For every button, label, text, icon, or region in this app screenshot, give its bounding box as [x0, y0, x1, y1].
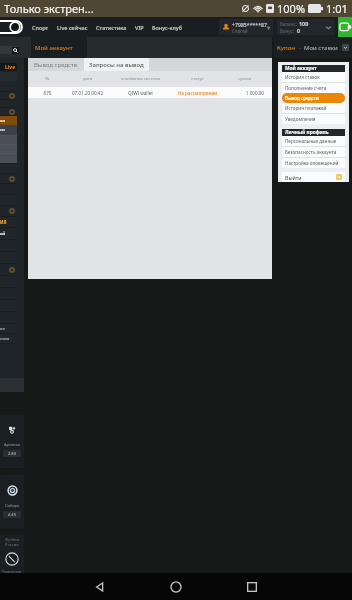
staticText: Сергей [232, 28, 248, 34]
staticText: Личный профиль [285, 129, 329, 136]
button[interactable]: Выйти [282, 172, 345, 182]
button[interactable]: Назад [86, 573, 114, 600]
button[interactable]: Купон [274, 37, 352, 58]
staticText: Мои ставки [304, 44, 338, 52]
staticText: дата [64, 76, 111, 82]
button[interactable]: Мой аккаунт [31, 37, 87, 58]
staticText: Спорт [32, 24, 49, 31]
button[interactable]: 4.45 [3, 511, 21, 518]
staticText: Баланс: [280, 21, 297, 27]
staticText: статус [170, 76, 225, 82]
button[interactable]: Развернуть купон [342, 44, 349, 51]
button[interactable] [0, 108, 17, 115]
staticText: Купон [277, 44, 296, 52]
staticText: ол [0, 118, 6, 124]
staticText: Live [5, 64, 16, 71]
staticText: VIP [135, 24, 144, 31]
button[interactable]: Спорт [28, 17, 53, 37]
staticText: Бонус: [280, 28, 295, 34]
staticText: Мой аккаунт [35, 44, 73, 52]
button[interactable]: Запросы на вывод [84, 58, 149, 71]
button[interactable] [0, 206, 17, 216]
staticText: Уведомления [285, 116, 316, 122]
button[interactable]: ай [0, 228, 17, 239]
staticText: Статистика [96, 24, 127, 31]
button[interactable]: Логотип [0, 17, 24, 37]
staticText: 100 [299, 20, 309, 27]
button[interactable]: Настройка оповещений [282, 158, 345, 168]
staticText: Только экстрен... [4, 1, 94, 16]
staticText: 1:01 [326, 1, 348, 16]
staticText: 670 [31, 90, 64, 96]
button[interactable]: нала [0, 334, 17, 343]
button[interactable]: Бонус-клуб [148, 17, 187, 37]
staticText: История ставок [285, 74, 320, 80]
button[interactable]: Live [0, 63, 17, 71]
button[interactable]: ол [0, 116, 17, 125]
button[interactable]: Уведомления [282, 114, 345, 124]
button[interactable]: Футбол [0, 535, 24, 573]
staticText: Вывод средств [34, 61, 78, 69]
staticText: Бонус-клуб [152, 24, 183, 31]
button[interactable]: ия [0, 125, 17, 135]
staticText: Выйти [285, 174, 302, 181]
button[interactable]: +7985*****87 [219, 19, 273, 35]
staticText: Мой аккаунт [285, 65, 317, 72]
button[interactable]: ··· [0, 415, 24, 468]
staticText: нала [0, 336, 10, 341]
button[interactable]: VIP [131, 17, 148, 37]
staticText: Настройка оповещений [285, 160, 339, 166]
button[interactable]: Live сейчас [53, 17, 92, 37]
button[interactable]: ··· [0, 475, 24, 528]
button[interactable]: 2.80 [3, 450, 21, 457]
button[interactable]: История ставок [282, 72, 345, 82]
staticText: 100% [277, 1, 306, 16]
staticText: 1 000.00 [225, 90, 264, 96]
button[interactable]: Обзор [238, 573, 266, 600]
staticText: 0 [297, 27, 301, 34]
button[interactable]: Баланс: [277, 19, 335, 35]
staticText: Live сейчас [57, 24, 88, 31]
button[interactable]: Безопасность аккаунта [282, 147, 345, 157]
button[interactable]: История платежей [282, 103, 345, 113]
staticText: Персональные данные [285, 138, 337, 144]
button[interactable]: Пополнение счета [282, 83, 345, 93]
staticText: QIWI wallet [111, 90, 170, 96]
button[interactable]: Вывод средств [282, 93, 345, 103]
staticText: № [31, 76, 64, 82]
button[interactable]: ия [0, 324, 17, 333]
button[interactable]: Вывод средств [28, 58, 84, 71]
staticText: Безопасность аккаунта [285, 149, 337, 155]
staticText: 2.80 [8, 451, 16, 456]
button[interactable]: ИЯ [0, 217, 17, 227]
staticText: сумма [225, 76, 264, 82]
staticText: Запросы на вывод [89, 61, 144, 69]
button[interactable] [0, 174, 17, 183]
staticText: На рассмотрении [170, 90, 225, 96]
button[interactable]: Персональные данные [282, 136, 345, 146]
button[interactable]: Поиск [0, 46, 19, 54]
staticText: - [299, 44, 301, 52]
button[interactable] [0, 264, 17, 275]
button[interactable]: Пополнить счёт [338, 17, 352, 37]
staticText: История платежей [285, 105, 327, 111]
staticText: ИЯ [0, 219, 7, 225]
staticText: +7985*****87 [232, 21, 267, 28]
staticText: ай [0, 231, 6, 237]
button[interactable]: Статистика [92, 17, 131, 37]
button[interactable] [0, 92, 17, 99]
staticText: платёжная система [111, 76, 170, 82]
button[interactable]: Домой [162, 573, 190, 600]
